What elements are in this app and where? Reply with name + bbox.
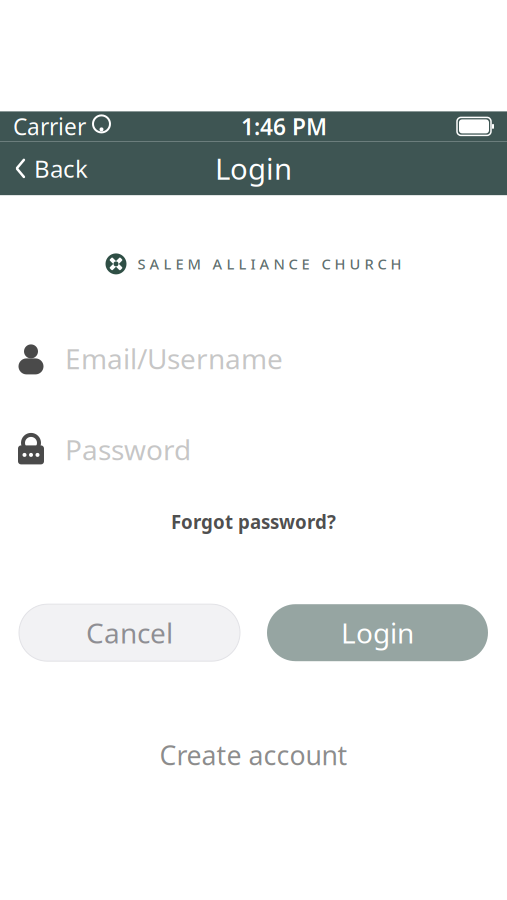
staticText: Login: [215, 149, 292, 188]
button[interactable]: Email/Username: [0, 336, 507, 380]
button[interactable]: Forgot password?: [157, 502, 350, 541]
staticText: Back: [34, 152, 88, 184]
staticText: Carrier: [13, 111, 86, 141]
button[interactable]: Back: [0, 144, 102, 192]
button[interactable]: Login: [267, 604, 488, 661]
button[interactable]: Create account: [143, 729, 363, 781]
staticText: Login: [341, 614, 414, 651]
staticText: 1:46 PM: [241, 111, 327, 141]
staticText: Create account: [159, 737, 347, 773]
button[interactable]: Password: [0, 427, 507, 471]
staticText: Password: [65, 431, 191, 468]
button[interactable]: Cancel: [19, 604, 240, 661]
staticText: Email/Username: [65, 340, 283, 377]
staticText: Cancel: [86, 614, 173, 651]
staticText: S A L E M A L L I A N C E C H U R C H: [137, 254, 401, 274]
staticText: Forgot password?: [171, 509, 336, 534]
